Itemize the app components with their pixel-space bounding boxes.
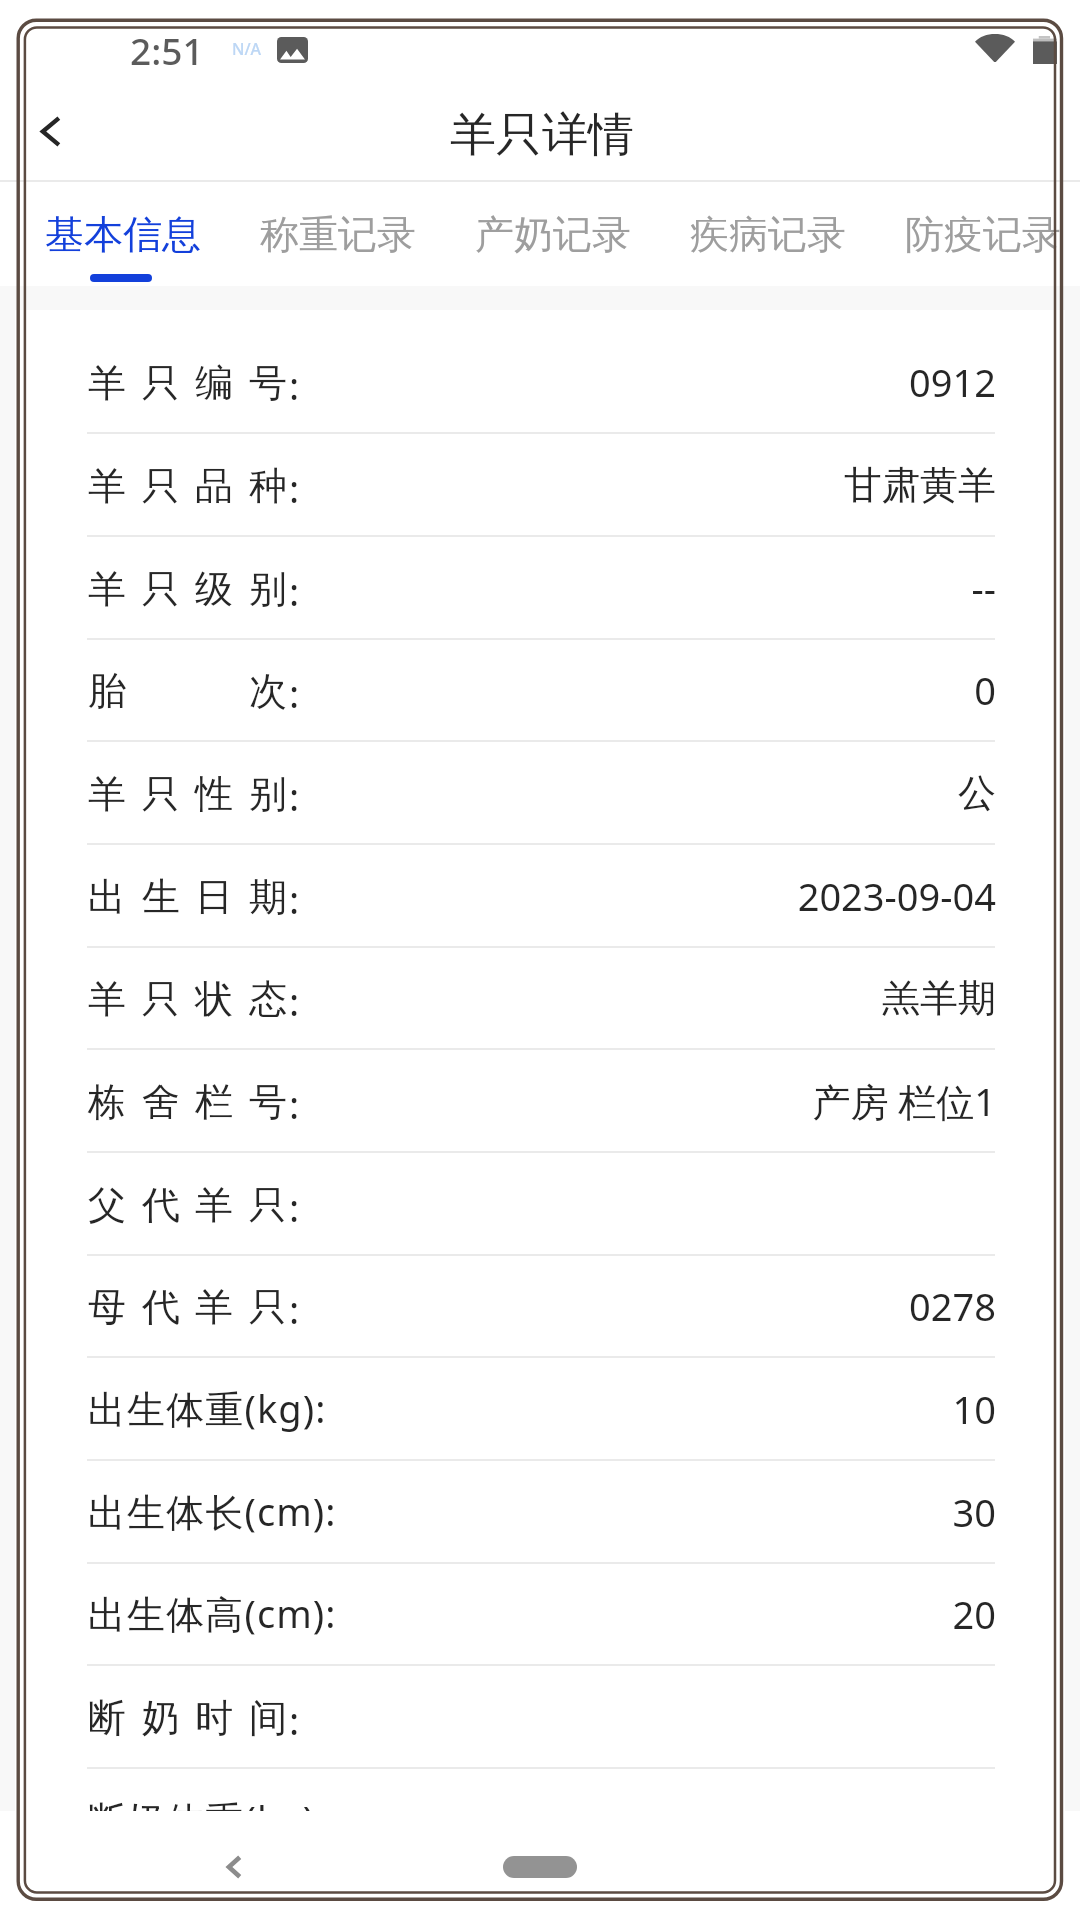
staticText: 只	[249, 1181, 287, 1229]
staticText: 羊	[88, 462, 126, 510]
button[interactable]: 产奶记录	[445, 182, 660, 286]
staticText: 羊	[88, 359, 126, 407]
staticText: 30	[952, 1486, 996, 1538]
button[interactable]: 羊	[0, 331, 1080, 434]
staticText: 2:51	[130, 25, 204, 75]
button[interactable]: 断奶体重(kg):	[0, 1769, 1080, 1811]
staticText: :	[289, 462, 300, 514]
staticText: 断	[88, 1694, 126, 1742]
staticText: 产奶记录	[475, 210, 631, 259]
staticText: 栋	[88, 1078, 126, 1126]
button[interactable]: 羊	[0, 434, 1080, 537]
staticText: 2023-09-04	[797, 870, 996, 922]
staticText: 日	[195, 873, 233, 921]
staticText: 次	[249, 667, 287, 715]
staticText: 断奶体重(kg):	[88, 1793, 327, 1811]
staticText: 0912	[909, 356, 996, 408]
staticText: :	[289, 873, 300, 925]
staticText: 母	[88, 1283, 126, 1331]
staticText: 只	[142, 975, 180, 1023]
button[interactable]: Back	[196, 1832, 272, 1898]
staticText: 甘肃黄羊	[844, 461, 996, 509]
button[interactable]: 羊	[0, 947, 1080, 1050]
staticText: 态	[249, 975, 287, 1023]
staticText: 编	[195, 359, 233, 407]
staticText: 羊	[195, 1283, 233, 1331]
staticText: 出	[88, 873, 126, 921]
staticText: 期	[249, 873, 287, 921]
staticText: 只	[142, 359, 180, 407]
button[interactable]: 出生体高(cm):	[0, 1563, 1080, 1666]
button[interactable]: 防疫记录	[875, 182, 1080, 286]
staticText: :	[289, 1694, 300, 1746]
staticText: 只	[142, 462, 180, 510]
staticText: 羊	[88, 565, 126, 613]
button[interactable]: 出	[0, 845, 1080, 948]
button[interactable]: 父	[0, 1153, 1080, 1256]
staticText: --	[971, 562, 996, 614]
button[interactable]: 母	[0, 1255, 1080, 1358]
staticText: 10	[952, 1383, 996, 1435]
staticText: :	[289, 359, 300, 411]
button[interactable]: 羊	[0, 742, 1080, 845]
staticText: 羊	[88, 770, 126, 818]
staticText: :	[289, 770, 300, 822]
staticText: 羊	[195, 1181, 233, 1229]
staticText: 级	[195, 565, 233, 613]
staticText: :	[289, 667, 300, 719]
staticText: 胎	[88, 667, 126, 715]
staticText: 只	[142, 770, 180, 818]
staticText: 间	[249, 1694, 287, 1742]
staticText: 羔羊期	[882, 974, 996, 1022]
staticText: 只	[249, 1283, 287, 1331]
staticText: 代	[142, 1283, 180, 1331]
button[interactable]: 基本信息	[15, 182, 230, 286]
staticText: 出生体长(cm):	[88, 1485, 337, 1537]
staticText: 品	[195, 462, 233, 510]
staticText: 父	[88, 1181, 126, 1229]
button[interactable]: 栋	[0, 1050, 1080, 1153]
staticText: 出生体高(cm):	[88, 1587, 337, 1639]
staticText: 代	[142, 1181, 180, 1229]
button[interactable]: Home	[503, 1856, 577, 1878]
button[interactable]: 羊	[0, 537, 1080, 640]
staticText: 羊	[88, 975, 126, 1023]
staticText: 奶	[142, 1694, 180, 1742]
staticText: 疾病记录	[690, 210, 846, 259]
button[interactable]: 出生体重(kg):	[0, 1358, 1080, 1461]
staticText: 生	[142, 873, 180, 921]
staticText: 别	[249, 770, 287, 818]
button[interactable]: 疾病记录	[660, 182, 875, 286]
button[interactable]: 出生体长(cm):	[0, 1461, 1080, 1564]
staticText: :	[289, 1078, 300, 1130]
staticText: 只	[142, 565, 180, 613]
button[interactable]: 断	[0, 1666, 1080, 1769]
staticText: 栏	[195, 1078, 233, 1126]
staticText: 别	[249, 565, 287, 613]
staticText: 0278	[909, 1280, 996, 1332]
staticText: :	[289, 565, 300, 617]
staticText: 0	[974, 664, 996, 716]
button[interactable]: Back	[5, 85, 95, 180]
staticText: 产房 栏位1	[812, 1075, 996, 1127]
staticText: 号	[249, 1078, 287, 1126]
staticText: 时	[195, 1694, 233, 1742]
staticText: 性	[195, 770, 233, 818]
staticText: :	[289, 1181, 300, 1233]
staticText: 称重记录	[260, 210, 416, 259]
staticText: 羊只详情	[450, 106, 634, 164]
staticText: 基本信息	[45, 210, 201, 259]
button[interactable]: 胎	[0, 639, 1080, 742]
staticText: :	[289, 1283, 300, 1335]
staticText: :	[289, 975, 300, 1027]
staticText: 舍	[142, 1078, 180, 1126]
staticText: 防疫记录	[905, 210, 1061, 259]
staticText: 状	[195, 975, 233, 1023]
staticText: 号	[249, 359, 287, 407]
button[interactable]: 称重记录	[230, 182, 445, 286]
staticText: 出生体重(kg):	[88, 1382, 327, 1434]
staticText: N/A	[232, 38, 262, 60]
staticText: 公	[958, 769, 996, 817]
staticText: 20	[952, 1588, 996, 1640]
staticText: 种	[249, 462, 287, 510]
